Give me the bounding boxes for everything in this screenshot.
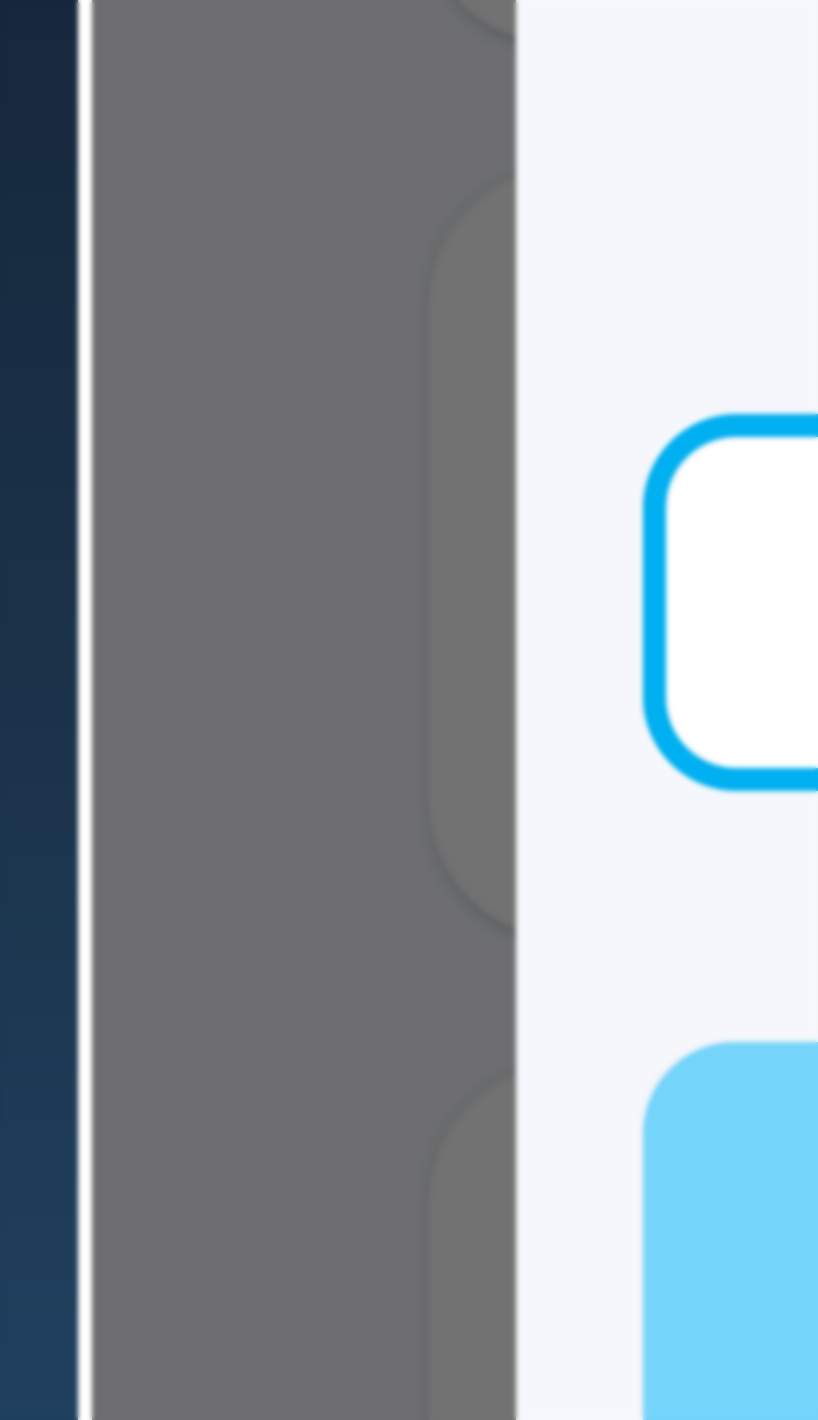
button[interactable]: Previous card bbox=[428, 0, 728, 41]
button[interactable]: Selected card bbox=[643, 414, 818, 791]
button[interactable]: Card bbox=[428, 166, 728, 940]
button[interactable]: Next card bbox=[428, 1063, 728, 1420]
button[interactable]: Card bbox=[643, 1042, 818, 1420]
